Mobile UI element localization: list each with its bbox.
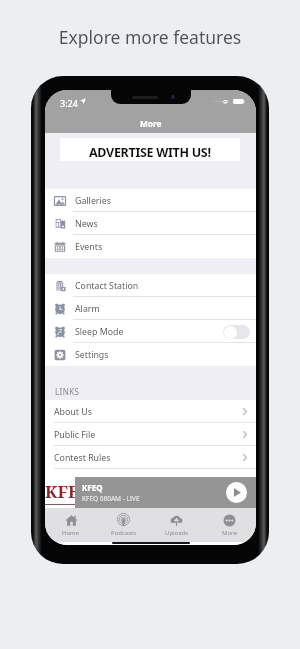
button[interactable]: More: [203, 508, 256, 542]
button[interactable]: KFEQ: [45, 477, 256, 508]
button[interactable]: Alarm: [45, 297, 256, 320]
button[interactable]: Uploads: [150, 508, 203, 542]
staticText: More: [222, 529, 237, 537]
button[interactable]: Sleep Mode: [45, 320, 256, 343]
staticText: Settings: [75, 349, 109, 361]
staticText: News: [75, 218, 98, 230]
staticText: Explore more features: [0, 25, 300, 49]
staticText: More: [140, 118, 162, 129]
button[interactable]: Podcasts: [97, 508, 150, 542]
staticText: Contest Rules: [54, 452, 111, 464]
button[interactable]: Galleries: [45, 189, 256, 212]
staticText: Alarm: [75, 303, 100, 315]
staticText: Galleries: [75, 195, 111, 207]
button[interactable]: Contest Rules: [45, 446, 256, 469]
staticText: 3:24: [60, 97, 78, 109]
staticText: Uploads: [165, 529, 189, 537]
staticText: Contact Station: [75, 280, 139, 292]
staticText: KFEQ 680AM - LIVE: [82, 494, 140, 503]
button[interactable]: Public File: [45, 423, 256, 446]
button[interactable]: Play: [226, 482, 247, 503]
staticText: About Us: [54, 406, 92, 418]
button[interactable]: Contact Station: [45, 274, 256, 297]
staticText: Home: [62, 529, 80, 537]
button[interactable]: Sleep Mode toggle: [223, 325, 250, 339]
button[interactable]: Settings: [45, 343, 256, 366]
button[interactable]: ADVERTISE WITH US!: [60, 138, 240, 161]
staticText: KFEQ: [82, 482, 103, 493]
staticText: KFEQ: [45, 480, 75, 503]
button[interactable]: About Us: [45, 400, 256, 423]
staticText: ADVERTISE WITH US!: [89, 144, 211, 161]
staticText: Events: [75, 241, 103, 253]
button[interactable]: Home: [45, 508, 97, 542]
staticText: LINKS: [55, 386, 80, 397]
button[interactable]: News: [45, 212, 256, 235]
button[interactable]: Events: [45, 235, 256, 258]
staticText: Sleep Mode: [75, 326, 124, 338]
staticText: Public File: [54, 429, 96, 441]
staticText: Podcasts: [111, 529, 137, 537]
